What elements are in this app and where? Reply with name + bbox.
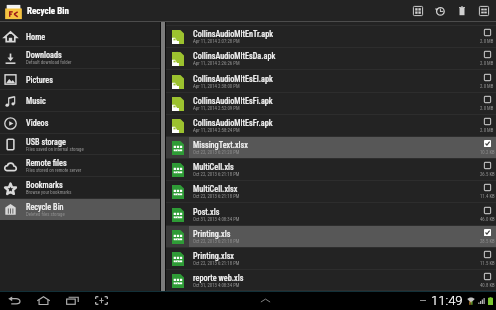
staticText: reporte web.xls [193, 273, 244, 283]
staticText: 2.0 MB [480, 128, 494, 134]
staticText: USB storage [26, 137, 66, 147]
staticText: Music [26, 96, 46, 106]
staticText: Apr 11, 2014 2:52:09 PM [193, 106, 240, 112]
staticText: 11:49 [431, 293, 463, 308]
button[interactable]: Delete [451, 0, 473, 22]
staticText: Oct 22, 2013 6:21:18 PM [193, 194, 240, 200]
button[interactable]: Pictures [0, 69, 160, 90]
button[interactable]: CollinsAudioMltEsEl.apk [166, 70, 496, 93]
button[interactable]: Downloads [0, 47, 160, 69]
button[interactable]: MissingText.xlsx [166, 137, 496, 159]
staticText: CollinsAudioMltEsFi.apk [193, 96, 273, 106]
staticText: 26.5 KB [480, 172, 495, 178]
staticText: Oct 22, 2013 6:21:20 PM [193, 150, 240, 156]
button[interactable]: Printing.xls [166, 226, 496, 248]
button[interactable]: Home [34, 291, 53, 310]
staticText: Bookmarks [26, 180, 63, 190]
button[interactable]: CollinsAudioMltEsFi.apk [166, 93, 496, 115]
staticText: 11.4 KB [480, 194, 495, 200]
button[interactable]: reporte web.xls [166, 270, 496, 291]
staticText: Videos [26, 118, 49, 128]
button[interactable]: CollinsAudioMltEsFr.apk [166, 115, 496, 137]
button[interactable]: CollinsAudioMltEsDa.apk [166, 48, 496, 70]
button[interactable]: Music [0, 90, 160, 112]
staticText: CollinsAudioMltEsFr.apk [193, 118, 273, 128]
staticText: Oct 22, 2013 6:21:18 PM [193, 239, 240, 245]
staticText: 2.0 MB [480, 39, 494, 45]
button[interactable]: Remote files [0, 155, 160, 177]
button[interactable]: Grid view [407, 0, 429, 22]
staticText: Recycle Bin [27, 6, 69, 17]
staticText: 40.8 KB [480, 283, 495, 289]
staticText: Apr 11, 2014 2:38:00 PM [193, 84, 240, 90]
staticText: Default download folder [26, 60, 72, 66]
staticText: 11.5 KB [480, 261, 495, 267]
staticText: CollinsAudioMltEsDa.apk [193, 51, 276, 61]
staticText: MissingText.xlsx [193, 140, 248, 150]
staticText: Oct 31, 2013 4:08:34 PM [193, 283, 240, 289]
staticText: Apr 11, 2014 2:58:24 PM [193, 128, 240, 134]
staticText: Recycle Bin [26, 202, 64, 212]
staticText: Oct 22, 2013 6:21:18 PM [193, 172, 240, 178]
button[interactable]: Home [0, 26, 160, 47]
button[interactable]: Videos [0, 112, 160, 134]
staticText: Files saved on internal storage [26, 147, 84, 153]
staticText: Downloads [26, 50, 62, 60]
staticText: MultiCell.xlsx [193, 184, 238, 194]
button[interactable]: Bookmarks [0, 177, 160, 199]
staticText: Home [26, 32, 46, 42]
staticText: Oct 22, 2013 6:21:18 PM [193, 261, 240, 267]
button[interactable]: Back [5, 291, 24, 310]
staticText: Remote files [26, 158, 67, 168]
staticText: MultiCell.xls [193, 162, 234, 172]
button[interactable]: Recent apps [63, 291, 82, 310]
staticText: 2.0 MB [480, 106, 494, 112]
staticText: 28.5 KB [480, 239, 495, 245]
staticText: Printing.xls [193, 229, 231, 239]
staticText: Files stored on remote server [26, 168, 82, 174]
button[interactable]: Post.xls [166, 203, 496, 226]
staticText: Apr 11, 2014 2:26:26 PM [193, 61, 240, 67]
staticText: 46.0 KB [480, 217, 495, 223]
staticText: Browse your bookmarks [26, 190, 72, 196]
staticText: 2.0 MB [480, 84, 494, 90]
button[interactable]: Recycle Bin [0, 199, 160, 220]
button[interactable]: USB storage [0, 134, 160, 155]
staticText: 10.2 KB [480, 150, 495, 156]
staticText: CollinsAudioMltEsEl.apk [193, 74, 273, 84]
staticText: CollinsAudioMltEnTr.apk [193, 29, 274, 39]
button[interactable]: MultiCell.xlsx [166, 181, 496, 203]
button[interactable]: MultiCell.xls [166, 159, 496, 181]
button[interactable]: Printing.xlsx [166, 248, 496, 270]
staticText: 2.0 MB [480, 61, 494, 67]
staticText: Printing.xlsx [193, 251, 235, 261]
button[interactable]: CollinsAudioMltEnTr.apk [166, 26, 496, 48]
staticText: Pictures [26, 75, 53, 85]
button[interactable]: Restore [429, 0, 451, 22]
button[interactable]: Fullscreen [92, 291, 111, 310]
button[interactable]: List view [473, 0, 495, 22]
staticText: Oct 31, 2013 4:08:34 PM [193, 217, 240, 223]
staticText: Post.xls [193, 207, 220, 217]
staticText: Deleted files storage [26, 212, 65, 218]
staticText: Apr 11, 2014 2:07:28 PM [193, 39, 240, 45]
